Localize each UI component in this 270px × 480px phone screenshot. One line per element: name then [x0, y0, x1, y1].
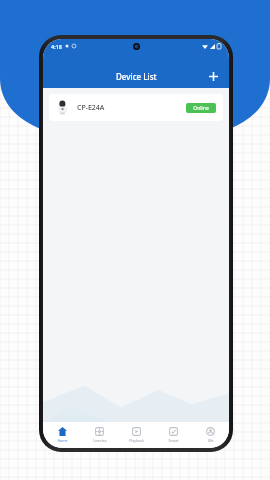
- button[interactable]: Livevieo: [81, 422, 118, 448]
- button[interactable]: Add device: [204, 67, 222, 85]
- staticText: CP-E24A: [77, 103, 105, 113]
- button[interactable]: Home: [43, 422, 81, 448]
- button[interactable]: Me: [192, 422, 229, 448]
- button[interactable]: CP-E24A: [49, 94, 223, 121]
- staticText: Online: [193, 105, 209, 112]
- staticText: Playback: [129, 438, 144, 443]
- staticText: Home: [57, 438, 68, 443]
- button[interactable]: Playback: [118, 422, 155, 448]
- staticText: 4:18: [51, 43, 62, 50]
- staticText: Device List: [116, 71, 157, 82]
- staticText: Smart: [168, 438, 179, 443]
- staticText: Livevieo: [93, 438, 107, 443]
- button[interactable]: Online: [186, 103, 216, 113]
- staticText: Me: [208, 438, 214, 443]
- button[interactable]: Smart: [155, 422, 192, 448]
